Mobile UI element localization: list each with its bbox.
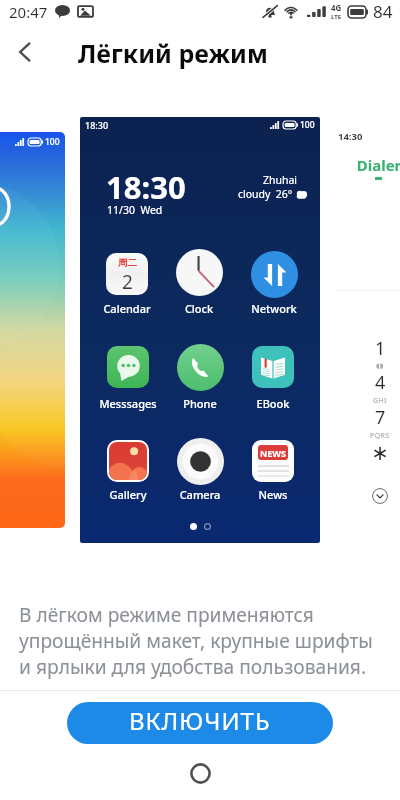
staticText: и ярлыки для удобства пользования. <box>19 653 367 679</box>
staticText: Phone <box>162 396 238 411</box>
button[interactable]: Wallpaper preview <box>0 132 65 528</box>
button[interactable]: Simple mode home preview <box>80 117 320 543</box>
staticText: ВКЛЮЧИТЬ <box>129 704 271 737</box>
staticText: Gallery <box>90 487 166 502</box>
button[interactable]: Messsages <box>107 346 149 388</box>
staticText: 100 <box>45 136 60 148</box>
staticText: В лёгком режиме применяются <box>19 601 314 627</box>
staticText: GHI <box>373 396 387 406</box>
button[interactable]: Gallery <box>107 440 149 482</box>
button[interactable]: Phone <box>177 344 224 391</box>
staticText: 4 <box>375 370 386 395</box>
staticText: 周二 <box>118 257 137 269</box>
staticText: 18:30 <box>106 166 186 208</box>
staticText: 20:47 <box>9 2 48 22</box>
button[interactable]: News <box>252 440 294 482</box>
staticText: 11/30 Wed <box>107 203 163 217</box>
button[interactable]: Network <box>251 251 298 298</box>
staticText: 4G <box>331 2 342 13</box>
button[interactable]: Calendar <box>106 253 148 295</box>
staticText: Camera <box>162 487 238 502</box>
button[interactable]: Dialer preview <box>334 122 400 536</box>
button[interactable]: Camera <box>177 438 224 485</box>
staticText: Лёгкий режим <box>78 36 268 70</box>
staticText: Messsages <box>90 396 166 411</box>
staticText: Zhuhai <box>230 173 297 187</box>
button[interactable]: Back <box>2 29 48 75</box>
staticText: PQRS <box>370 431 390 441</box>
staticText: NEWS <box>260 447 287 459</box>
staticText: News <box>235 487 311 502</box>
staticText: LTE <box>331 13 342 21</box>
staticText: Dialer <box>344 155 400 175</box>
staticText: ◖◗ <box>376 362 385 370</box>
staticText: 18:30 <box>85 119 109 131</box>
staticText: 84 <box>373 0 393 23</box>
staticText: cloudy 26° <box>238 187 293 201</box>
staticText: Calendar <box>89 301 165 316</box>
staticText: ∗ <box>345 441 400 465</box>
staticText: 7 <box>375 405 386 430</box>
staticText: Network <box>236 301 312 316</box>
button[interactable]: ВКЛЮЧИТЬ <box>67 702 333 744</box>
staticText: Clock <box>161 301 237 316</box>
staticText: EBook <box>235 396 311 411</box>
staticText: 100 <box>300 119 315 131</box>
button[interactable]: Home <box>0 760 400 786</box>
staticText: упрощённый макет, крупные шрифты <box>19 627 373 653</box>
staticText: 2 <box>122 269 133 295</box>
staticText: 14:30 <box>338 130 363 143</box>
button[interactable]: Clock <box>176 249 223 296</box>
button[interactable]: EBook <box>252 346 294 388</box>
staticText: 1 <box>375 336 386 361</box>
